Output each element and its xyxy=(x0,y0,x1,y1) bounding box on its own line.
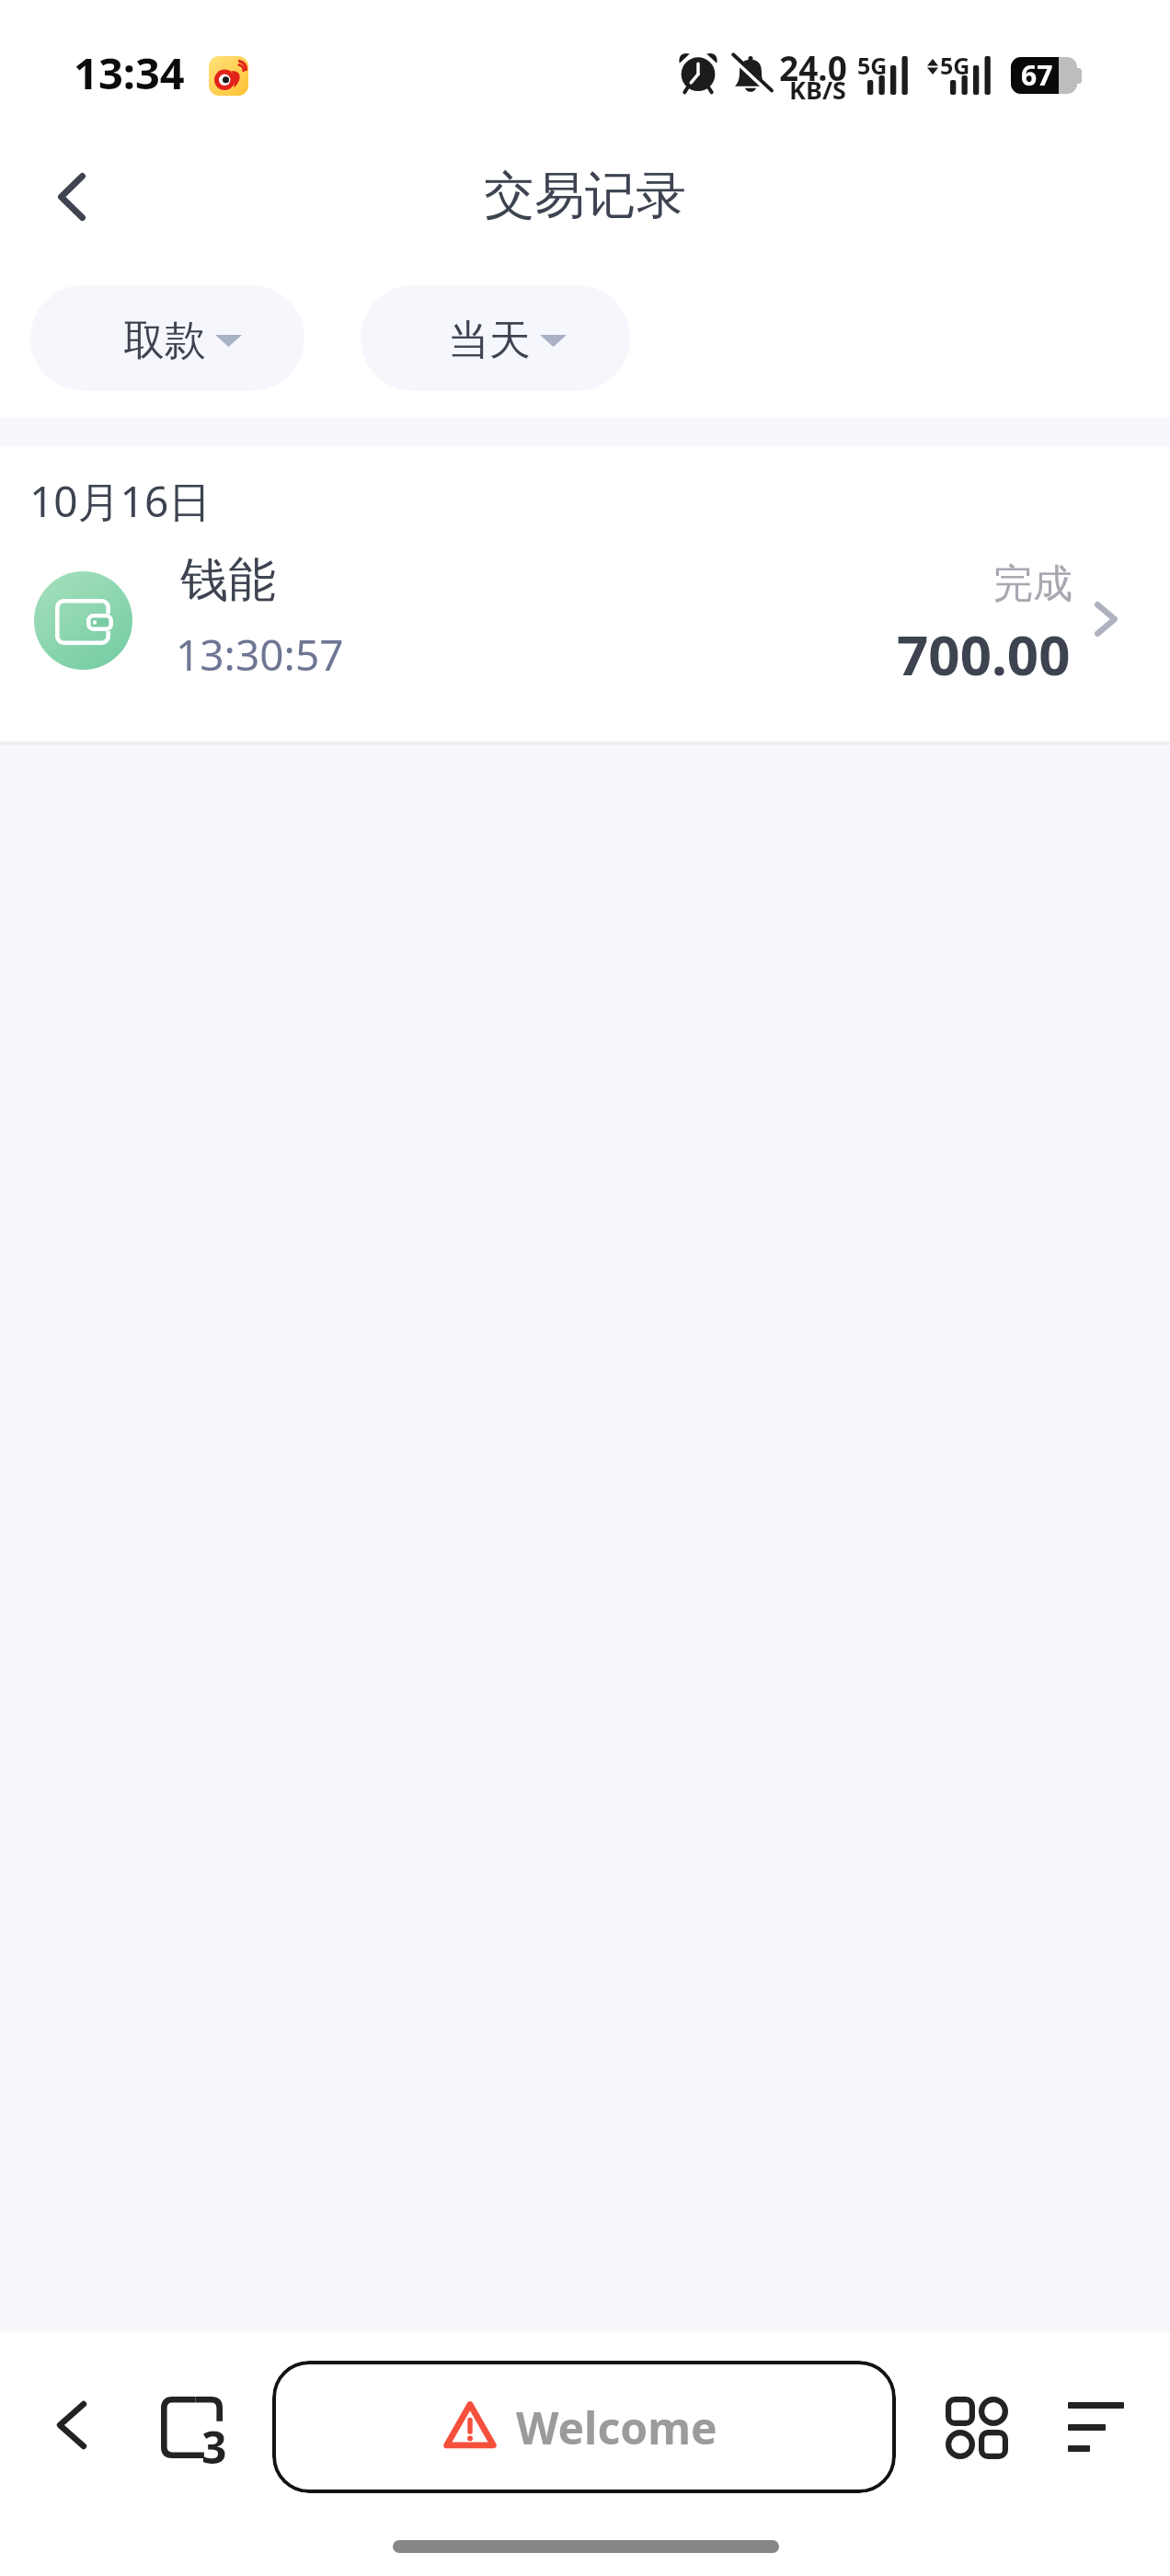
button[interactable]: Welcome xyxy=(272,2361,896,2493)
staticText: 13:34 xyxy=(74,43,185,102)
button[interactable]: 当天 xyxy=(361,285,630,391)
staticText: 3 xyxy=(201,2417,227,2477)
staticText: 67 xyxy=(1021,57,1053,93)
staticText: Welcome xyxy=(516,2398,717,2457)
staticText: 13:30:57 xyxy=(176,626,344,684)
button[interactable]: 钱能 xyxy=(0,447,1170,742)
button[interactable]: Back xyxy=(29,155,114,239)
staticText: 完成 xyxy=(993,559,1072,609)
button[interactable]: Tabs xyxy=(145,2381,237,2473)
button[interactable]: 取款 xyxy=(30,285,304,391)
staticText: 10月16日 xyxy=(29,472,212,530)
button[interactable]: Menu xyxy=(1045,2379,1146,2480)
staticText: 取款 xyxy=(123,315,206,367)
staticText: 5G xyxy=(940,50,970,81)
staticText: 24.0 xyxy=(779,44,847,90)
staticText: 钱能 xyxy=(180,550,276,611)
staticText: 交易记录 xyxy=(484,164,686,227)
staticText: 当天 xyxy=(448,315,531,367)
button[interactable]: Apps xyxy=(927,2378,1027,2478)
staticText: 5G xyxy=(857,50,888,81)
staticText: KB/S xyxy=(789,73,846,107)
button[interactable]: Back xyxy=(31,2385,112,2466)
staticText: 700.00 xyxy=(897,616,1071,692)
